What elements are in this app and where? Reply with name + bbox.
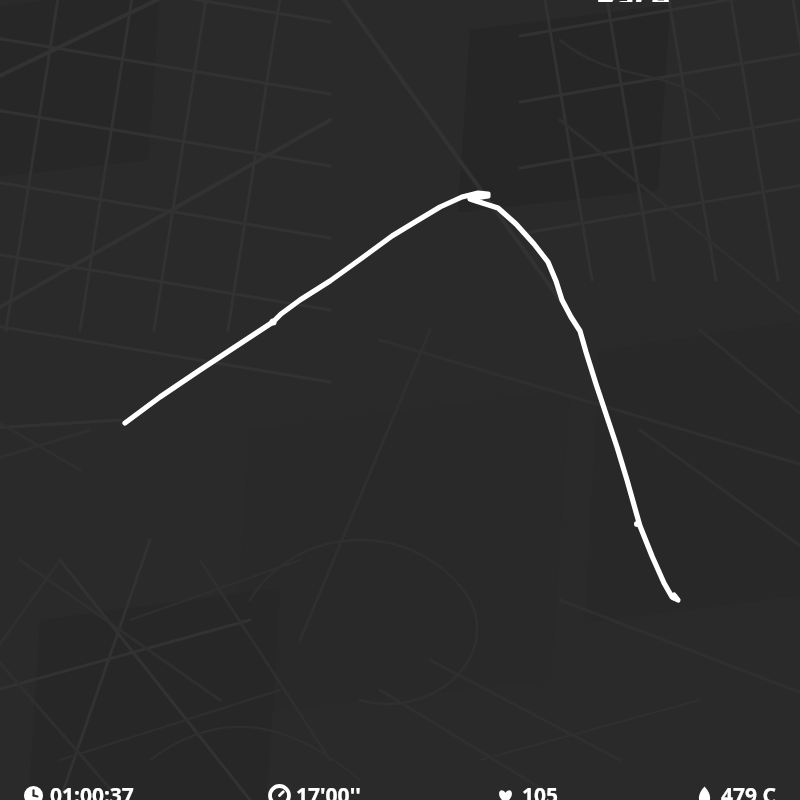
button[interactable]: , Pace — [578, 0, 671, 2]
staticText: 479 C — [721, 781, 776, 800]
button[interactable]: Average pace — [268, 781, 363, 800]
staticText: 17'00'' — [296, 781, 361, 800]
button[interactable]: Calories burned — [693, 781, 778, 800]
staticText: , Pace — [578, 0, 671, 2]
button[interactable]: Elapsed time — [22, 781, 136, 800]
staticText: 01:00:37 — [50, 781, 134, 800]
staticText: 105 — [522, 781, 559, 800]
button[interactable]: Heart rate — [494, 781, 561, 800]
